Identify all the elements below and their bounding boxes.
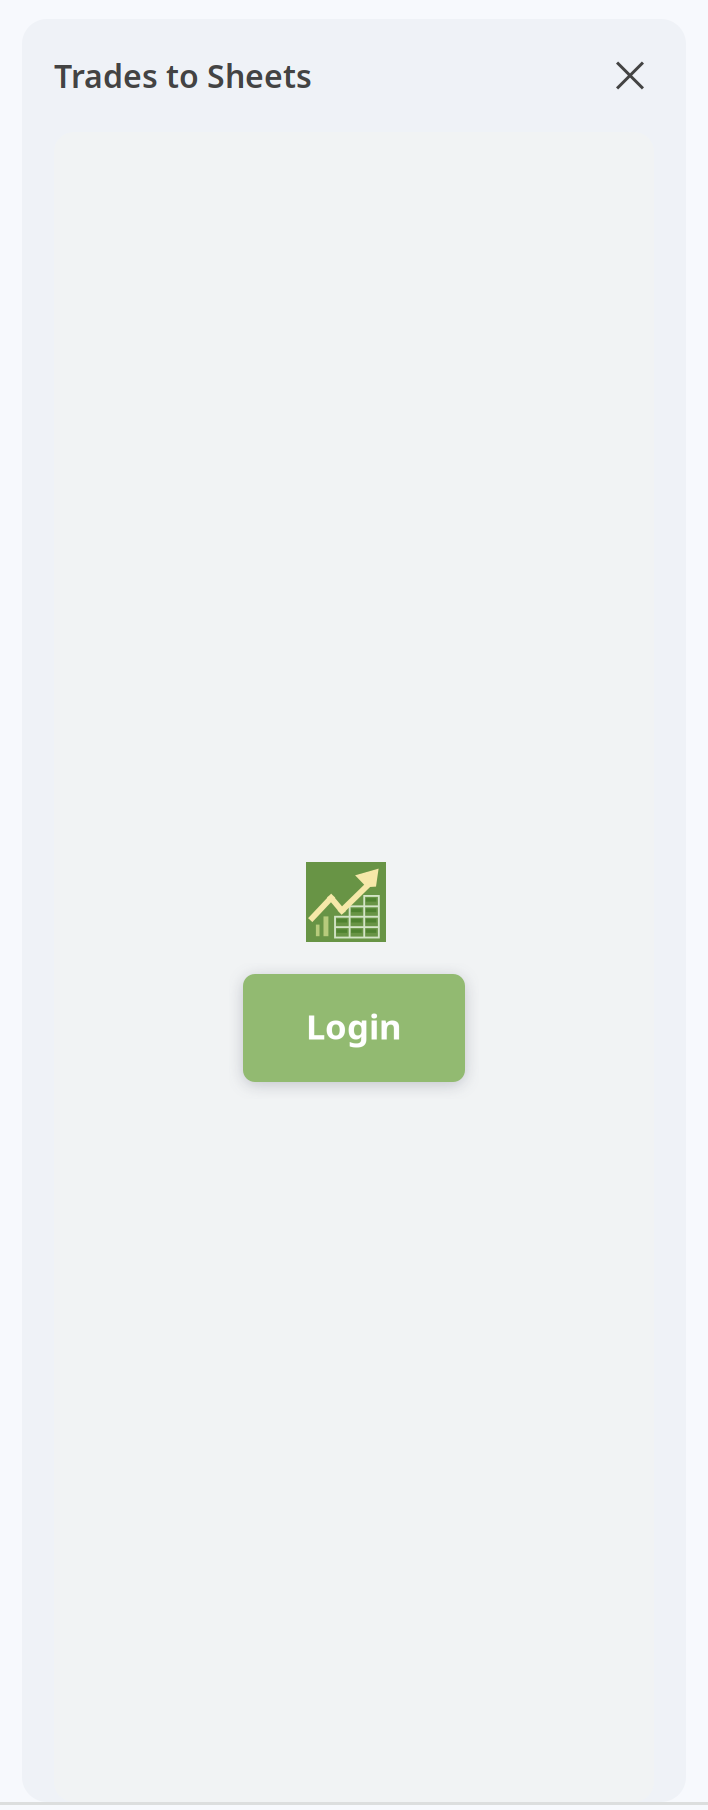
button[interactable]: Close bbox=[607, 52, 653, 98]
button[interactable]: Login bbox=[243, 974, 465, 1082]
staticText: Trades to Sheets bbox=[54, 54, 312, 97]
staticText: Login bbox=[306, 1003, 402, 1049]
